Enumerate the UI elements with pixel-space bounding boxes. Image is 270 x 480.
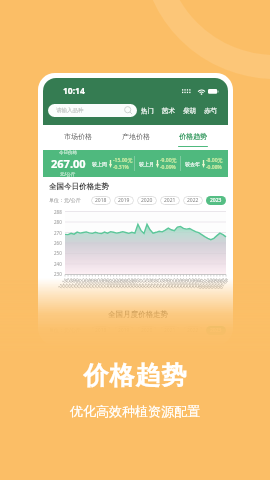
staticText: 全国月度价格走势 [108, 310, 168, 319]
staticText: 2023 [210, 197, 222, 204]
staticText: 较去年 [185, 161, 200, 167]
button[interactable]: 2020 [137, 196, 157, 205]
staticText: 请输入品种 [56, 107, 84, 114]
staticText: 价格趋势 [179, 132, 207, 141]
button[interactable]: 2022 [183, 196, 203, 205]
staticText: 250 [54, 250, 62, 256]
button[interactable]: 请输入品种 [48, 104, 137, 117]
button[interactable]: 赤芍 [200, 107, 221, 115]
staticText: 全国今日价格走势 [49, 182, 109, 191]
staticText: 产地价格 [122, 132, 150, 141]
staticText: 2021 [164, 197, 176, 204]
button[interactable]: 茜术 [158, 107, 179, 115]
staticText: -8.00元 [206, 157, 223, 164]
staticText: 230 [54, 271, 62, 277]
button[interactable]: 产地价格 [113, 128, 159, 147]
staticText: 今日价格 [59, 150, 77, 156]
staticText: 元/公斤 [60, 171, 76, 177]
staticText: 柴胡 [183, 107, 196, 115]
staticText: -0.09% [160, 164, 176, 171]
button[interactable]: 市场价格 [55, 128, 101, 147]
staticText: 10:14 [63, 85, 85, 96]
staticText: 288 [54, 209, 62, 215]
staticText: 较上月 [139, 161, 154, 167]
staticText: 市场价格 [64, 132, 92, 141]
staticText: 优化高效种植资源配置 [70, 403, 200, 419]
staticText: 热门 [141, 107, 154, 115]
staticText: 2022 [187, 197, 199, 204]
staticText: -9.00元 [160, 157, 177, 164]
button[interactable]: 2018 [91, 196, 111, 205]
staticText: 单位：元/公斤 [49, 197, 81, 204]
staticText: -0.08% [206, 164, 222, 171]
button[interactable]: 2019 [114, 196, 134, 205]
staticText: 赤芍 [204, 107, 217, 115]
button[interactable]: 价格趋势 [170, 128, 216, 147]
staticText: 较上周 [92, 161, 107, 167]
staticText: 茜术 [162, 107, 175, 115]
staticText: 240 [54, 261, 62, 267]
button[interactable]: 热门 [137, 107, 158, 115]
staticText: -15.00元 [113, 157, 133, 164]
other: Search [124, 106, 133, 115]
button[interactable]: 2021 [160, 196, 180, 205]
staticText: 2018 [95, 197, 107, 204]
staticText: 2020 [141, 197, 153, 204]
staticText: -0.31% [113, 164, 129, 171]
button[interactable]: 柴胡 [179, 107, 200, 115]
staticText: 270 [54, 230, 62, 236]
staticText: 267.00 [51, 156, 86, 171]
staticText: 2019 [118, 197, 130, 204]
staticText: 价格趋势 [83, 360, 187, 391]
button[interactable]: 2023 [206, 196, 226, 205]
staticText: 260 [54, 240, 62, 246]
staticText: 280 [54, 219, 62, 225]
